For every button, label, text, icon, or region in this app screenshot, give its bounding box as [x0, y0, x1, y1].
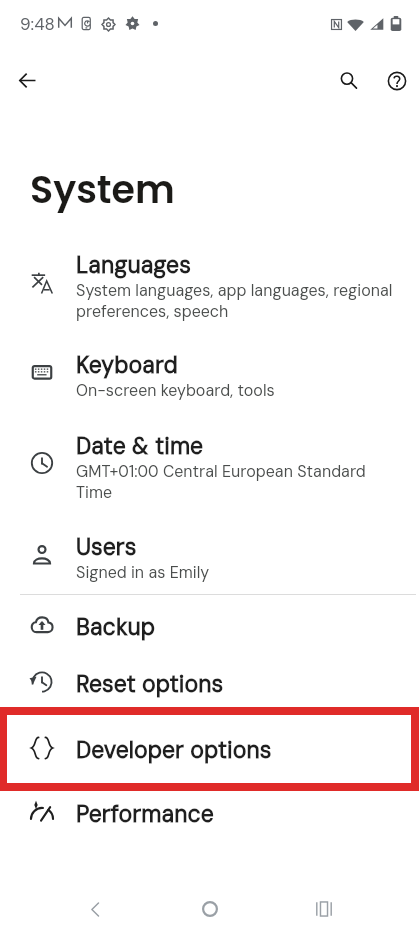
- staticText: On-screen keyboard, tools: [76, 380, 275, 401]
- staticText: Performance: [76, 799, 214, 829]
- staticText: Keyboard: [76, 350, 178, 380]
- staticText: Date & time: [76, 431, 204, 461]
- button[interactable]: Help and feedback: [373, 57, 420, 104]
- button[interactable]: Back: [70, 884, 120, 933]
- button[interactable]: Recent apps: [299, 884, 349, 933]
- button[interactable]: Backup: [0, 602, 420, 647]
- button[interactable]: Developer options: [0, 725, 420, 770]
- staticText: Time: [76, 482, 113, 503]
- button[interactable]: [3, 711, 415, 787]
- staticText: Languages: [76, 250, 191, 280]
- button[interactable]: Home: [185, 884, 235, 933]
- staticText: Developer options: [76, 735, 272, 765]
- staticText: preferences, speech: [76, 301, 229, 322]
- button[interactable]: Search settings: [325, 57, 372, 104]
- button[interactable]: Users: [0, 522, 420, 586]
- button[interactable]: Languages: [0, 240, 420, 323]
- staticText: Reset options: [76, 669, 224, 699]
- staticText: Backup: [76, 612, 156, 642]
- staticText: System languages, app languages, regiona…: [76, 280, 393, 301]
- button[interactable]: Performance: [0, 789, 420, 834]
- staticText: 9:48: [20, 13, 55, 35]
- button[interactable]: Keyboard: [0, 340, 420, 404]
- staticText: System: [30, 163, 175, 216]
- button[interactable]: Reset options: [0, 659, 420, 704]
- staticText: GMT+01:00 Central European Standard: [76, 461, 366, 482]
- staticText: Users: [76, 532, 137, 562]
- button[interactable]: Date & time: [0, 421, 420, 504]
- staticText: Signed in as Emily: [76, 562, 210, 583]
- button[interactable]: Navigate up: [4, 57, 51, 104]
